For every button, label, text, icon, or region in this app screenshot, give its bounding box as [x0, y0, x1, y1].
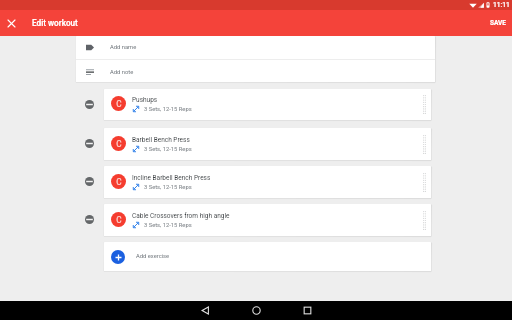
button[interactable]: Add note	[76, 60, 435, 82]
staticText: Pushups	[132, 96, 158, 104]
staticText: 3 Sets, 12-15 Reps	[144, 184, 192, 191]
button[interactable]: Remove Barbell Bench Press	[0, 128, 104, 160]
staticText: C	[116, 99, 122, 109]
button[interactable]: C	[104, 128, 431, 160]
staticText: Edit workout	[32, 18, 78, 28]
button[interactable]: Add name	[76, 36, 435, 59]
staticText: Add name	[110, 44, 137, 51]
staticText: C	[116, 215, 122, 225]
button[interactable]: Remove Cable Crossovers from high angle	[0, 204, 104, 236]
button[interactable]: Close	[3, 15, 20, 32]
staticText: C	[116, 139, 122, 149]
staticText: SAVE	[490, 19, 507, 27]
button[interactable]: Back	[185, 301, 225, 320]
button[interactable]: C	[104, 166, 431, 198]
button[interactable]: C	[104, 204, 431, 236]
button[interactable]: C	[104, 89, 431, 120]
staticText: 3 Sets, 12-15 Reps	[144, 106, 192, 113]
staticText: 3 Sets, 12-15 Reps	[144, 146, 192, 153]
button[interactable]: Reorder	[418, 89, 431, 120]
staticText: Add exercise	[136, 253, 170, 260]
button[interactable]: Reorder	[418, 166, 431, 198]
button[interactable]: Recent apps	[287, 301, 327, 320]
button[interactable]: Home	[236, 301, 276, 320]
staticText: C	[116, 177, 122, 187]
staticText: 3 Sets, 12-15 Reps	[144, 222, 192, 229]
button[interactable]: SAVE	[484, 14, 512, 32]
button[interactable]: Add exercise	[104, 242, 431, 271]
staticText: 11:11	[493, 1, 510, 9]
button[interactable]: Reorder	[418, 204, 431, 236]
button[interactable]: Reorder	[418, 128, 431, 160]
button[interactable]: Remove Pushups	[0, 89, 104, 120]
staticText: Incline Barbell Bench Press	[132, 174, 211, 182]
button[interactable]: Remove Incline Barbell Bench Press	[0, 166, 104, 198]
staticText: Barbell Bench Press	[132, 136, 190, 144]
staticText: Cable Crossovers from high angle	[132, 212, 230, 220]
staticText: Add note	[110, 69, 134, 76]
